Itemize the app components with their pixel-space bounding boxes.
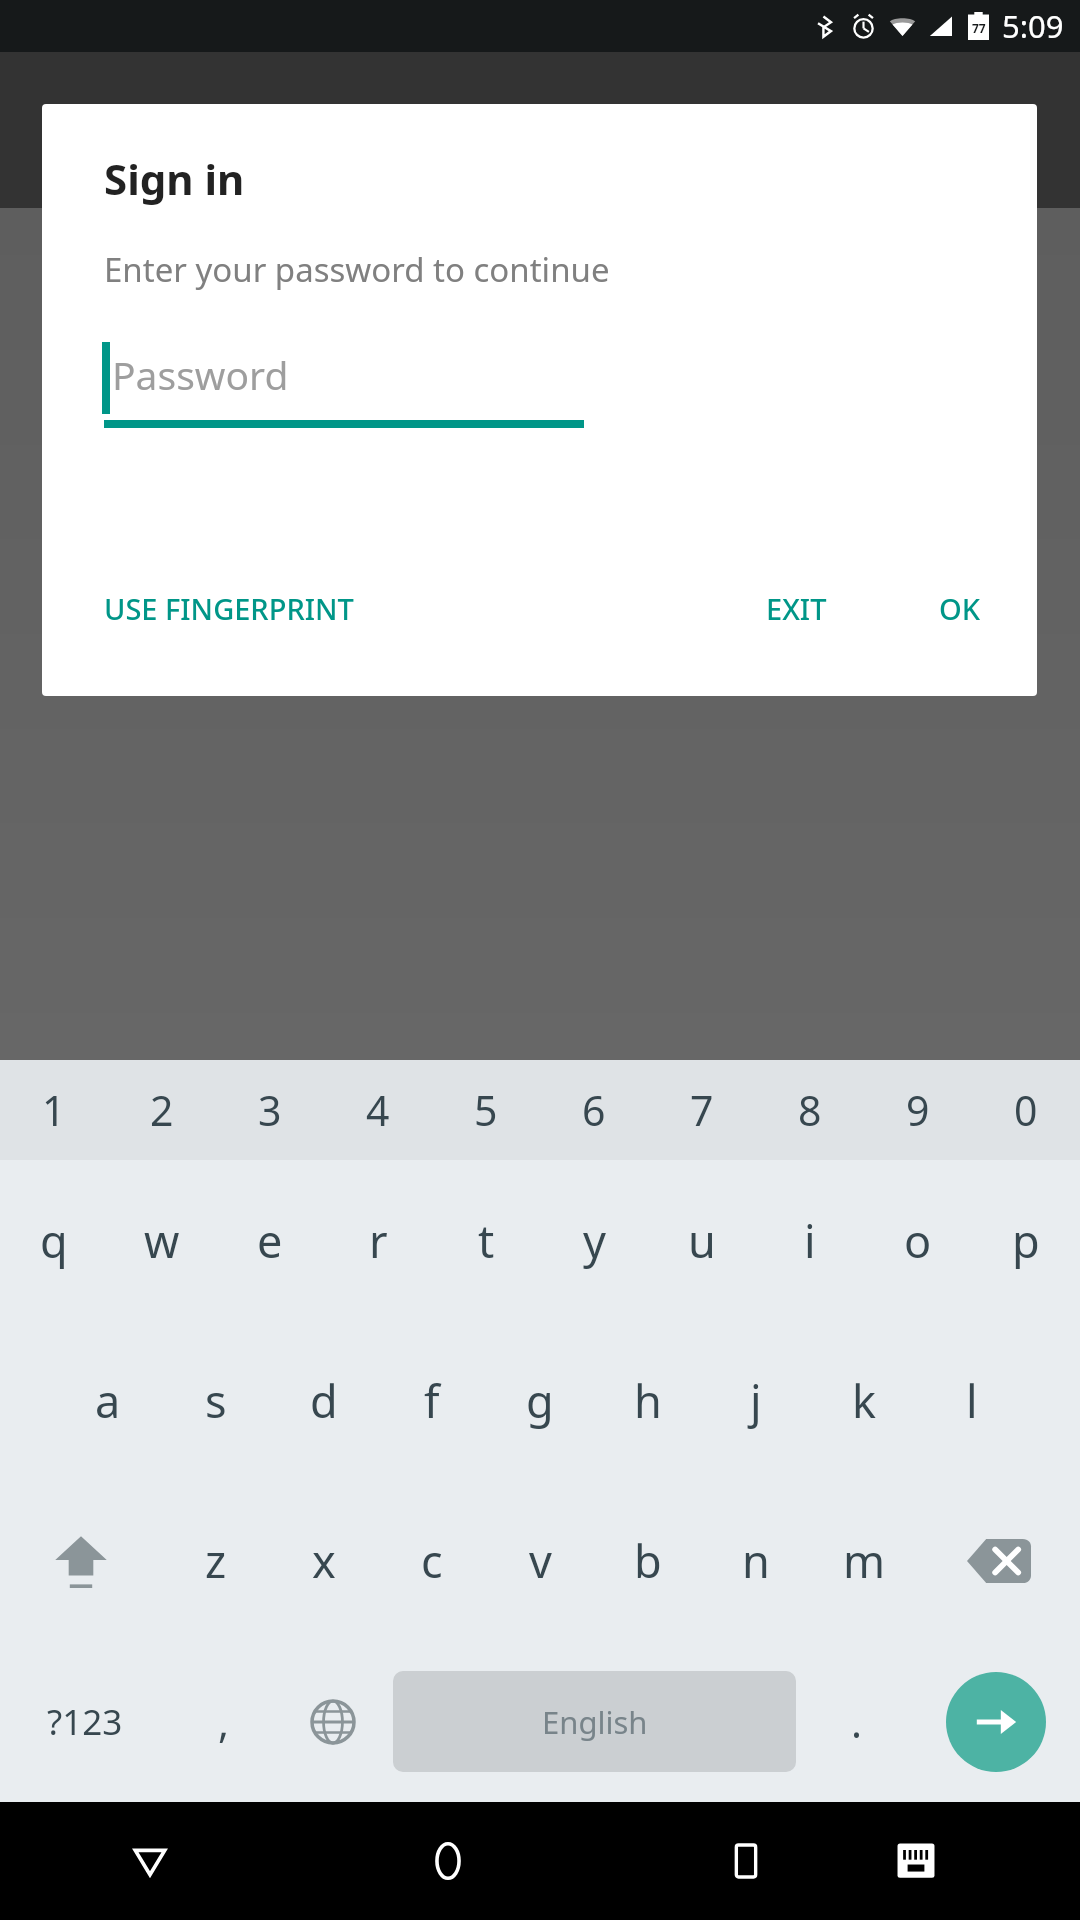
staticText: , [218, 1694, 229, 1750]
staticText: l [966, 1370, 978, 1431]
button[interactable]: Enter [946, 1672, 1046, 1772]
button[interactable]: i [756, 1160, 864, 1320]
staticText: n [742, 1530, 770, 1591]
button[interactable]: f [378, 1320, 486, 1480]
button[interactable]: EXIT [752, 577, 841, 640]
staticText: . [851, 1694, 862, 1750]
staticText: USE FINGERPRINT [104, 589, 354, 628]
staticText: ?123 [47, 1698, 123, 1746]
button[interactable]: More options [966, 81, 1064, 179]
button[interactable]: Back [0, 1802, 299, 1920]
button[interactable]: e [216, 1160, 324, 1320]
staticText: p [1012, 1210, 1040, 1271]
button[interactable]: Search [770, 81, 868, 179]
button[interactable]: 6 [540, 1060, 648, 1160]
button[interactable]: Shift [0, 1480, 162, 1641]
button[interactable]: Sort [868, 81, 966, 179]
staticText: 5:09 [1002, 5, 1064, 47]
staticText: a [95, 1370, 121, 1431]
staticText: 5 [474, 1082, 498, 1138]
staticText: c [421, 1530, 443, 1591]
button[interactable]: Home [299, 1802, 597, 1920]
staticText: 77 [972, 20, 986, 36]
staticText: k [852, 1370, 877, 1431]
staticText: i [804, 1210, 816, 1271]
button[interactable]: x [270, 1480, 378, 1641]
button[interactable]: p [972, 1160, 1080, 1320]
staticText: OK [939, 589, 981, 628]
button[interactable]: 1 [0, 1060, 108, 1160]
staticText: v [529, 1530, 552, 1591]
staticText: j [750, 1370, 762, 1431]
button[interactable]: ?123 [0, 1641, 169, 1802]
button[interactable]: s [162, 1320, 270, 1480]
staticText: y [583, 1210, 606, 1271]
button[interactable]: w [108, 1160, 216, 1320]
button[interactable]: Backspace [918, 1480, 1080, 1641]
button[interactable]: , [169, 1641, 278, 1802]
button[interactable]: g [486, 1320, 594, 1480]
staticText: 8 [798, 1082, 822, 1138]
staticText: Password [112, 348, 289, 401]
staticText: g [526, 1370, 554, 1431]
staticText: Sign in [104, 150, 245, 207]
button[interactable]: 3 [216, 1060, 324, 1160]
button[interactable]: y [540, 1160, 648, 1320]
button[interactable]: t [432, 1160, 540, 1320]
button[interactable]: h [594, 1320, 702, 1480]
button[interactable]: 0 [972, 1060, 1080, 1160]
staticText: o [904, 1210, 932, 1271]
button[interactable]: 5 [432, 1060, 540, 1160]
staticText: Enter your password to continue [104, 247, 610, 292]
staticText: 2 [150, 1082, 174, 1138]
button[interactable]: a [54, 1320, 162, 1480]
staticText: r [369, 1210, 388, 1271]
button[interactable]: 9 [864, 1060, 972, 1160]
button[interactable]: Keyboard [895, 1802, 1080, 1920]
staticText: 1 [42, 1082, 66, 1138]
button[interactable]: u [648, 1160, 756, 1320]
staticText: q [40, 1210, 68, 1271]
button[interactable]: c [378, 1480, 486, 1641]
staticText: x [312, 1530, 336, 1591]
staticText: f [424, 1370, 440, 1431]
button[interactable]: Change language [278, 1641, 387, 1802]
staticText: t [478, 1210, 495, 1271]
staticText: 3 [258, 1082, 282, 1138]
button[interactable]: d [270, 1320, 378, 1480]
button[interactable]: . [802, 1641, 911, 1802]
staticText: 9 [906, 1082, 930, 1138]
button[interactable]: j [702, 1320, 810, 1480]
button[interactable]: b [594, 1480, 702, 1641]
button[interactable]: 2 [108, 1060, 216, 1160]
button[interactable]: m [810, 1480, 918, 1641]
staticText: m [843, 1530, 886, 1591]
button[interactable]: z [162, 1480, 270, 1641]
button[interactable]: Recent apps [597, 1802, 895, 1920]
staticText: 0 [1014, 1082, 1038, 1138]
staticText: English [542, 1701, 648, 1743]
staticText: 7 [690, 1082, 714, 1138]
button[interactable]: Password [104, 342, 584, 428]
button[interactable]: 7 [648, 1060, 756, 1160]
button[interactable]: USE FINGERPRINT [90, 577, 368, 640]
button[interactable]: k [810, 1320, 918, 1480]
button[interactable]: English [393, 1671, 796, 1772]
button[interactable]: OK [925, 577, 995, 640]
button[interactable]: 8 [756, 1060, 864, 1160]
button[interactable]: r [324, 1160, 432, 1320]
staticText: w [144, 1210, 180, 1271]
button[interactable]: l [918, 1320, 1026, 1480]
button[interactable]: v [486, 1480, 594, 1641]
button[interactable]: q [0, 1160, 108, 1320]
staticText: EXIT [766, 589, 827, 628]
button[interactable]: n [702, 1480, 810, 1641]
button[interactable]: 4 [324, 1060, 432, 1160]
staticText: s [205, 1370, 227, 1431]
staticText: z [205, 1530, 227, 1591]
staticText: d [310, 1370, 338, 1431]
staticText: 4 [366, 1082, 390, 1138]
staticText: h [634, 1370, 662, 1431]
button[interactable]: o [864, 1160, 972, 1320]
